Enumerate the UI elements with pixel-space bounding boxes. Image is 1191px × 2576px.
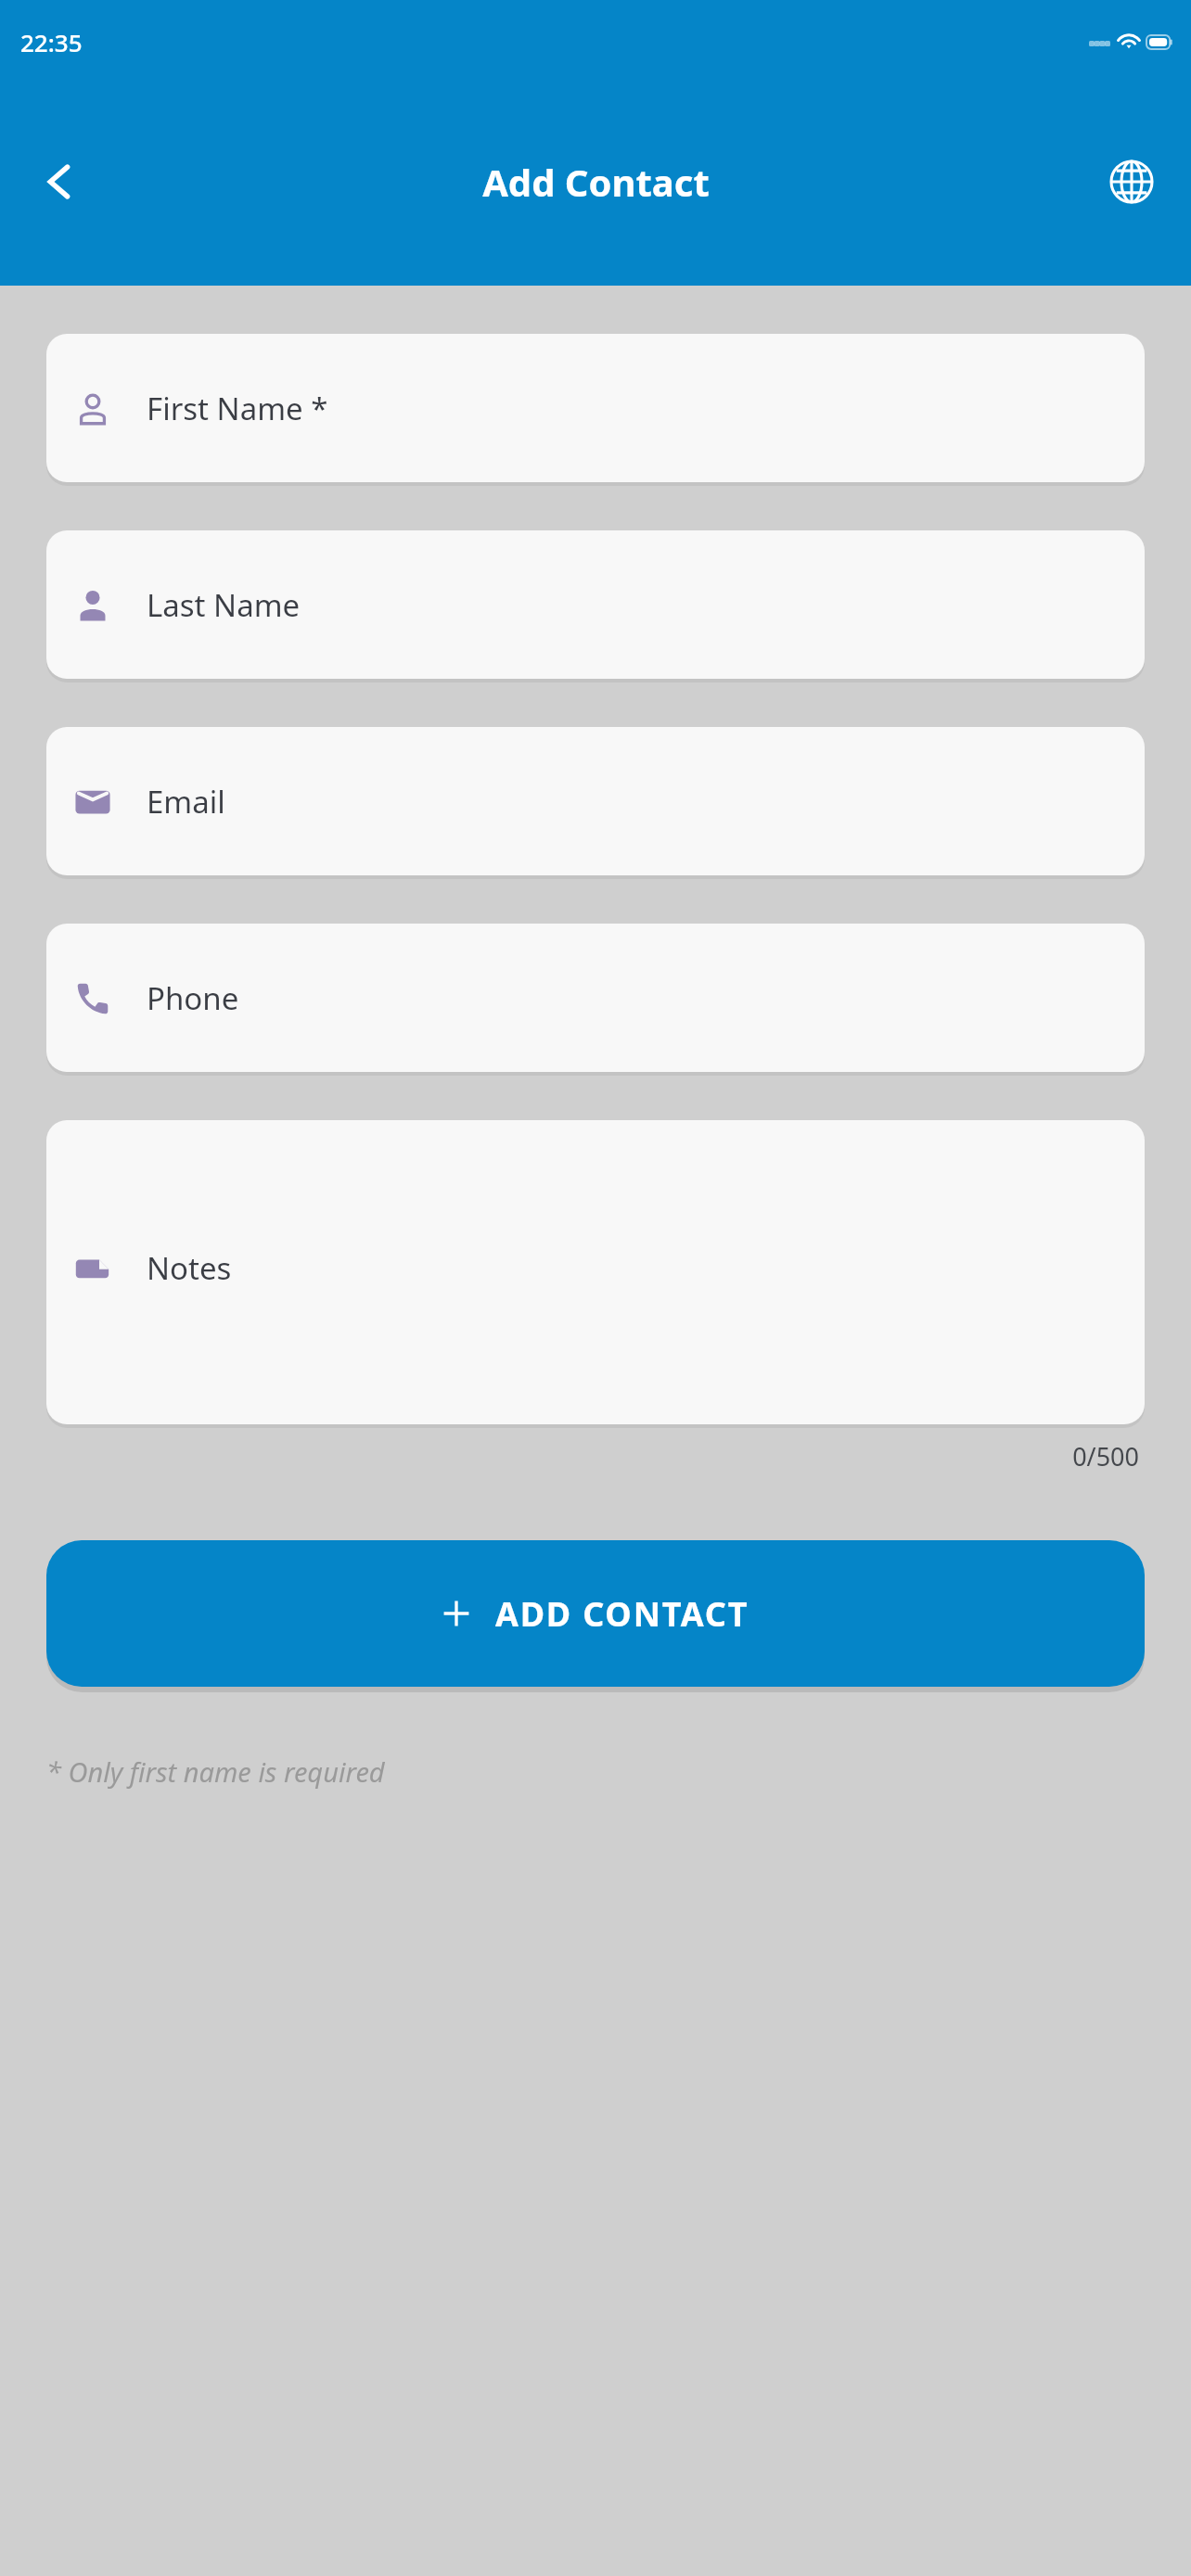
button[interactable]: First Name * xyxy=(46,334,1145,482)
staticText: Notes xyxy=(147,1247,232,1289)
button[interactable]: Phone xyxy=(46,924,1145,1072)
button[interactable]: Last Name xyxy=(46,530,1145,679)
staticText: 22:35 xyxy=(20,26,83,58)
staticText: Phone xyxy=(147,977,239,1019)
staticText: Last Name xyxy=(147,584,301,626)
staticText: 0/500 xyxy=(46,1439,1139,1473)
button[interactable]: Email xyxy=(46,727,1145,875)
button[interactable]: Back xyxy=(26,148,93,215)
staticText: Add Contact xyxy=(482,157,710,207)
button[interactable]: Language xyxy=(1102,152,1161,211)
staticText: ADD CONTACT xyxy=(495,1591,749,1637)
staticText: Email xyxy=(147,781,225,823)
button[interactable]: ADD CONTACT xyxy=(46,1540,1145,1687)
button[interactable]: Notes xyxy=(46,1120,1145,1424)
staticText: * Only first name is required xyxy=(46,1753,385,1790)
staticText: First Name * xyxy=(147,388,328,429)
